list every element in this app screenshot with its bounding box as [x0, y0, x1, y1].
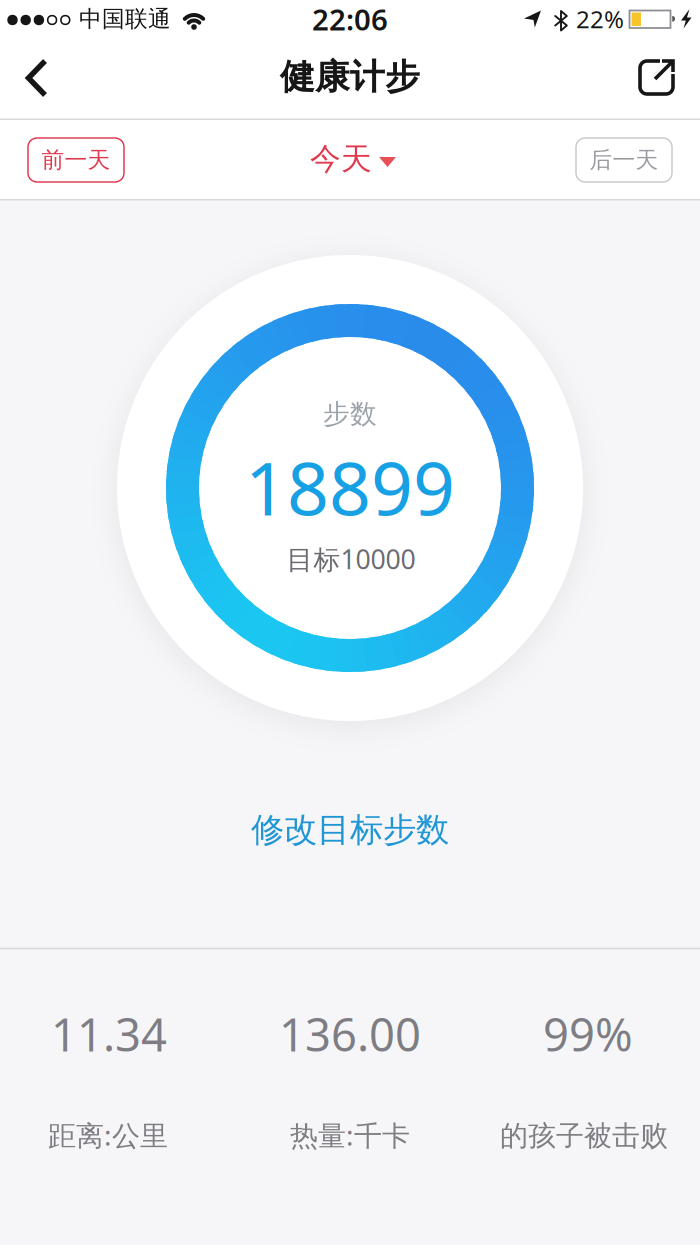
- staticText: 前一天: [41, 146, 110, 174]
- staticText: 99%: [543, 1004, 633, 1064]
- staticText: 中国联通: [79, 5, 171, 33]
- staticText: 的孩子被击败: [500, 1119, 668, 1153]
- staticText: 热量:千卡: [290, 1116, 410, 1154]
- button[interactable]: 修改目标步数: [251, 809, 449, 850]
- staticText: 18899: [245, 438, 455, 536]
- staticText: 距离:公里: [48, 1116, 168, 1154]
- staticText: 目标10000: [286, 541, 415, 577]
- button[interactable]: [640, 61, 673, 94]
- staticText: 22:06: [312, 0, 388, 38]
- staticText: 136.00: [279, 1004, 421, 1064]
- staticText: 今天: [310, 140, 372, 178]
- button[interactable]: 前一天: [28, 138, 124, 182]
- staticText: 修改目标步数: [251, 809, 449, 850]
- staticText: 22%: [576, 3, 624, 35]
- staticText: 11.34: [51, 1004, 167, 1064]
- staticText: 步数: [323, 398, 377, 430]
- staticText: 健康计步: [280, 56, 420, 98]
- button[interactable]: [25, 58, 49, 98]
- button[interactable]: 后一天: [576, 138, 672, 182]
- button[interactable]: 今天: [310, 140, 396, 178]
- staticText: 后一天: [589, 146, 658, 174]
